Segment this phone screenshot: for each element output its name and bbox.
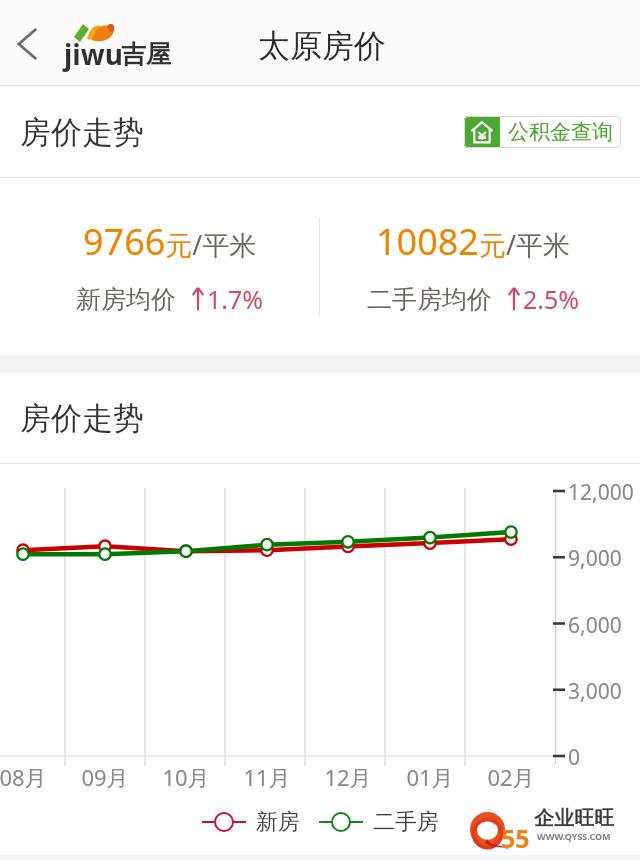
staticText: 9766元/平米: [83, 217, 257, 266]
staticText: WWW.QYSS.COM: [537, 830, 611, 842]
staticText: 房价走势: [20, 113, 144, 152]
staticText: 10月: [162, 762, 210, 792]
staticText: 吉屋: [121, 39, 171, 70]
staticText: 二手房: [373, 808, 439, 836]
staticText: 二手房均价: [367, 284, 492, 315]
staticText: 3,000: [568, 677, 622, 706]
staticText: 太原房价: [258, 26, 386, 66]
staticText: 1.7%: [207, 282, 264, 316]
button[interactable]: 公积金查询: [464, 116, 621, 148]
staticText: 0: [568, 743, 581, 772]
button[interactable]: 新房: [202, 808, 300, 836]
button[interactable]: 二手房: [319, 808, 439, 836]
staticText: 新房: [256, 808, 300, 836]
staticText: 9,000: [568, 544, 622, 573]
staticText: 2.5%: [523, 282, 580, 316]
staticText: 08月: [0, 762, 47, 792]
staticText: 09月: [81, 762, 129, 792]
staticText: 房价走势: [20, 399, 144, 438]
staticText: 02月: [487, 762, 535, 792]
staticText: 55: [501, 821, 530, 855]
button[interactable]: Back: [0, 16, 56, 72]
staticText: 10082元/平米: [376, 217, 571, 266]
staticText: 公积金查询: [508, 119, 613, 145]
staticText: 12月: [324, 762, 372, 792]
staticText: 01月: [406, 762, 454, 792]
staticText: 12,000: [568, 478, 634, 507]
staticText: 新房均价: [76, 284, 176, 315]
staticText: 6,000: [568, 611, 622, 640]
staticText: 企业旺旺: [534, 806, 614, 831]
staticText: 11月: [243, 762, 291, 792]
staticText: jiwu: [64, 35, 123, 73]
